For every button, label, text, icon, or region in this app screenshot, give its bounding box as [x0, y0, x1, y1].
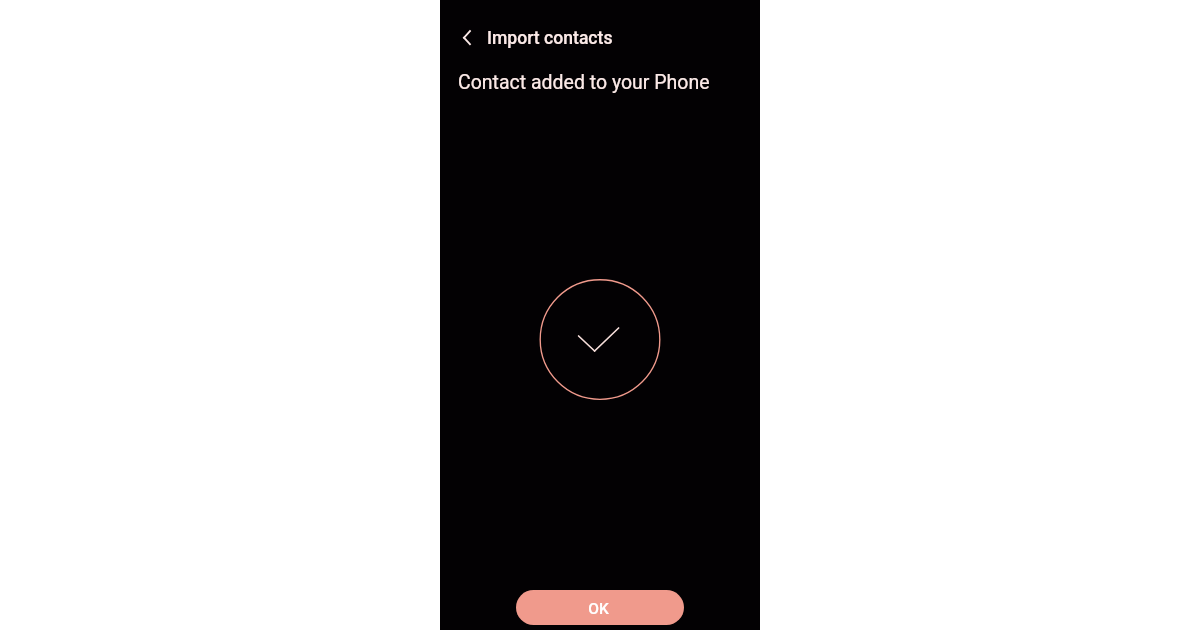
staticText: Contact added to your Phone — [458, 71, 710, 94]
button[interactable]: Back — [455, 26, 479, 50]
staticText: OK — [588, 600, 609, 618]
staticText: Import contacts — [487, 28, 613, 49]
button[interactable]: OK — [516, 590, 684, 625]
